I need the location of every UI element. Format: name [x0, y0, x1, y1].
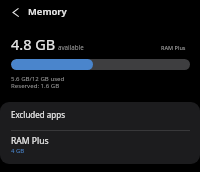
staticText: RAM Plus — [161, 44, 186, 51]
staticText: Excluded apps — [11, 109, 65, 120]
staticText: Memory — [28, 5, 67, 18]
button[interactable]: Back — [6, 3, 24, 21]
staticText: 4 GB — [11, 147, 25, 155]
staticText: RAM Plus — [11, 135, 49, 147]
staticText: Reserved: 1.6 GB — [11, 81, 60, 89]
staticText: 5.6 GB/12 GB used — [11, 74, 65, 82]
button[interactable]: RAM Plus — [0, 131, 200, 164]
staticText: available — [58, 43, 84, 51]
button[interactable]: Excluded apps — [0, 102, 200, 127]
staticText: 4.8 GB — [11, 34, 56, 54]
